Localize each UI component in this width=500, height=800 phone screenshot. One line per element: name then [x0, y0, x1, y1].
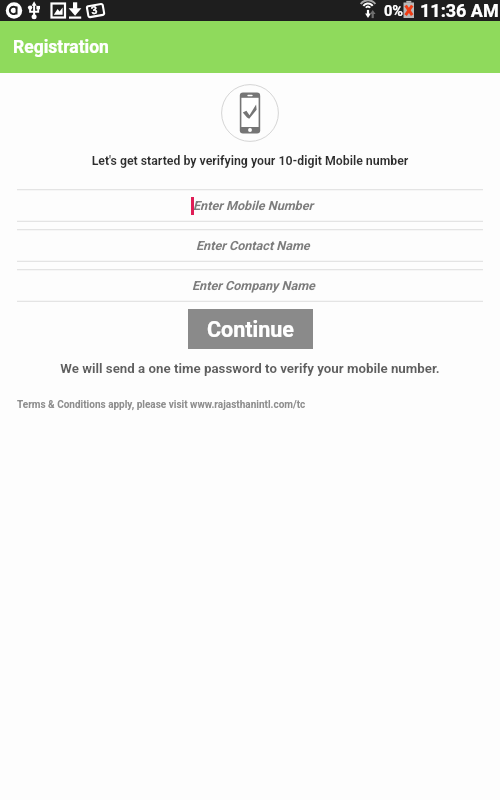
button[interactable]: Enter Mobile Number — [17, 189, 483, 222]
staticText: Enter Mobile Number — [193, 198, 314, 213]
staticText: Enter Company Name — [192, 278, 315, 293]
staticText: Let's get started by verifying your 10-d… — [14, 154, 486, 168]
staticText: 3 — [90, 3, 99, 17]
button[interactable]: Terms & Conditions apply, please visit w… — [17, 399, 306, 411]
staticText: 0% — [384, 2, 404, 19]
staticText: We will send a one time password to veri… — [10, 361, 490, 377]
staticText: 11:36 AM — [420, 0, 499, 21]
staticText: Continue — [207, 317, 294, 342]
button[interactable]: Continue — [188, 309, 313, 349]
button[interactable]: Enter Company Name — [17, 269, 483, 302]
button[interactable]: Enter Contact Name — [17, 229, 483, 262]
other: Mobile number verification — [221, 84, 279, 142]
staticText: Enter Contact Name — [196, 238, 310, 253]
staticText: Registration — [13, 37, 109, 58]
